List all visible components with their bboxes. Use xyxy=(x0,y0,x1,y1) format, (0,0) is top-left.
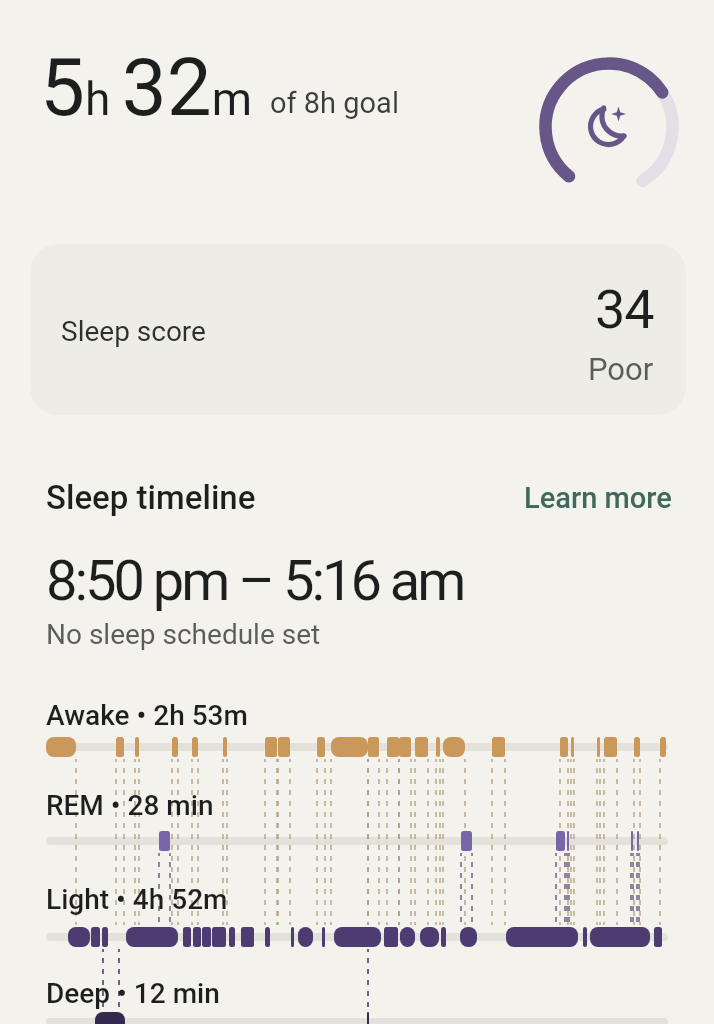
staticText: 34 xyxy=(595,278,654,341)
staticText: Sleep score xyxy=(61,315,206,348)
staticText: Learn more xyxy=(524,481,672,515)
button[interactable]: Sleep score xyxy=(30,244,686,415)
staticText: 8:50 pm – 5:16 am xyxy=(46,548,464,614)
staticText: Sleep timeline xyxy=(46,478,256,517)
staticText: Light • 4h 52m xyxy=(46,883,228,916)
staticText: Deep • 12 min xyxy=(46,977,220,1010)
staticText: of 8h goal xyxy=(270,86,399,120)
staticText: Awake • 2h 53m xyxy=(46,699,248,732)
staticText: 5h 32m xyxy=(40,41,252,135)
staticText: REM • 28 min xyxy=(46,789,214,822)
staticText: No sleep schedule set xyxy=(46,618,321,651)
button[interactable]: Learn more xyxy=(524,481,672,515)
staticText: Poor xyxy=(588,351,654,387)
